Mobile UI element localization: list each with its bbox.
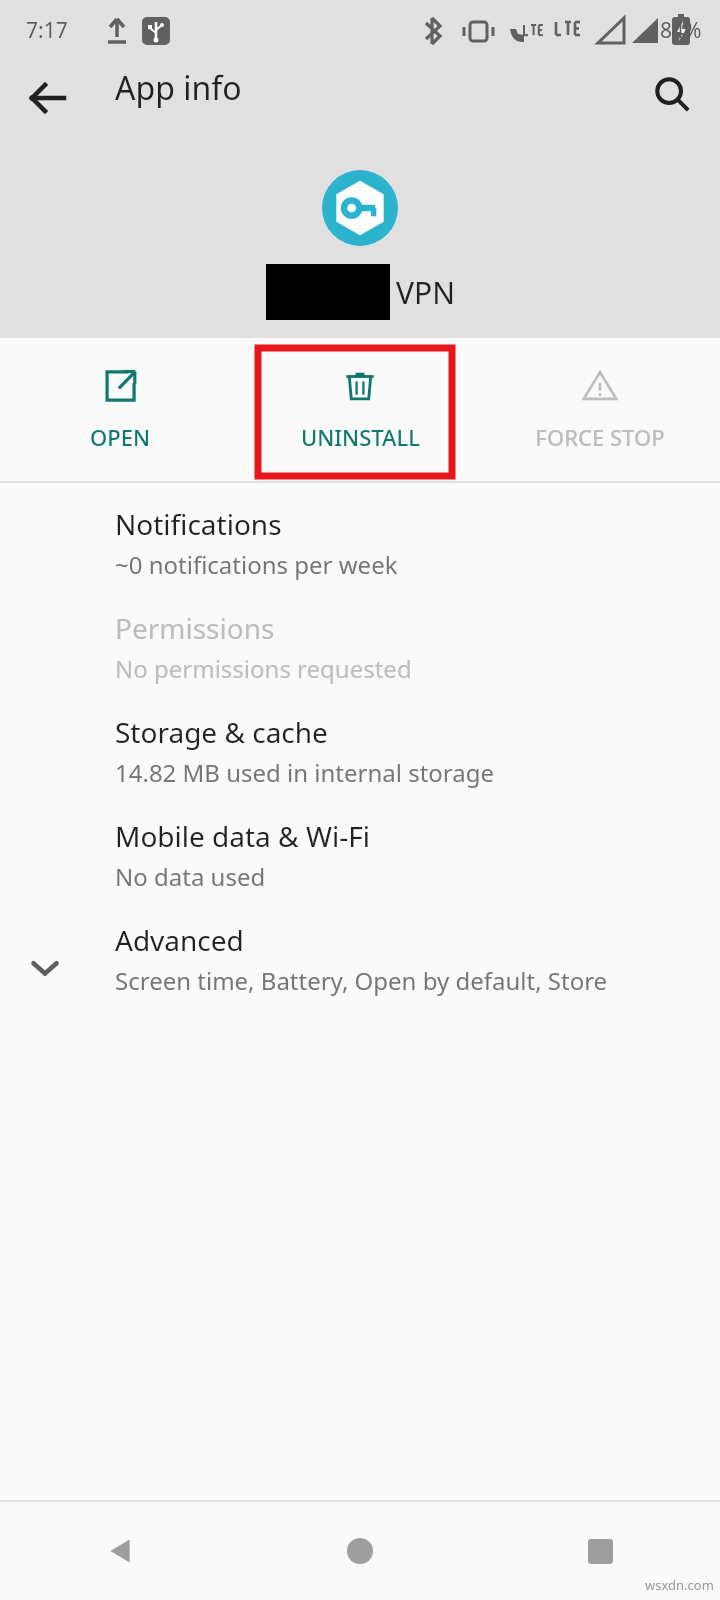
staticText: 84%	[660, 16, 702, 45]
staticText: Mobile data & Wi-Fi	[115, 817, 370, 855]
staticText: 7:17	[26, 16, 68, 45]
button[interactable]: Back	[0, 1502, 240, 1600]
button[interactable]: Back	[0, 50, 96, 146]
staticText: App info	[115, 66, 242, 110]
staticText: FORCE STOP	[535, 422, 665, 452]
button[interactable]: Recents	[480, 1502, 720, 1600]
staticText: ~0 notifications per week	[115, 548, 398, 581]
staticText: VPN	[396, 272, 455, 313]
button[interactable]: Home	[240, 1502, 480, 1600]
staticText: UNINSTALL	[301, 422, 420, 452]
staticText: 14.82 MB used in internal storage	[115, 756, 495, 789]
button[interactable]: Mobile data & Wi-Fi	[0, 817, 720, 893]
button[interactable]: Notifications	[0, 505, 720, 581]
staticText: No data used	[115, 860, 266, 893]
staticText: Storage & cache	[115, 713, 328, 751]
staticText: Advanced	[115, 921, 244, 959]
button[interactable]: OPEN	[0, 338, 240, 481]
button[interactable]: Permissions	[0, 609, 720, 685]
staticText: Notifications	[115, 505, 282, 543]
staticText: wsxdn.com	[645, 1576, 714, 1594]
button[interactable]: FORCE STOP	[480, 338, 720, 481]
button[interactable]: Search	[624, 46, 720, 142]
staticText: No permissions requested	[115, 652, 412, 685]
staticText: OPEN	[90, 422, 150, 452]
button[interactable]: UNINSTALL	[240, 338, 480, 481]
button[interactable]: Advanced	[0, 921, 720, 997]
staticText: Permissions	[115, 609, 275, 647]
button[interactable]: Storage & cache	[0, 713, 720, 789]
staticText: Screen time, Battery, Open by default, S…	[115, 964, 608, 997]
